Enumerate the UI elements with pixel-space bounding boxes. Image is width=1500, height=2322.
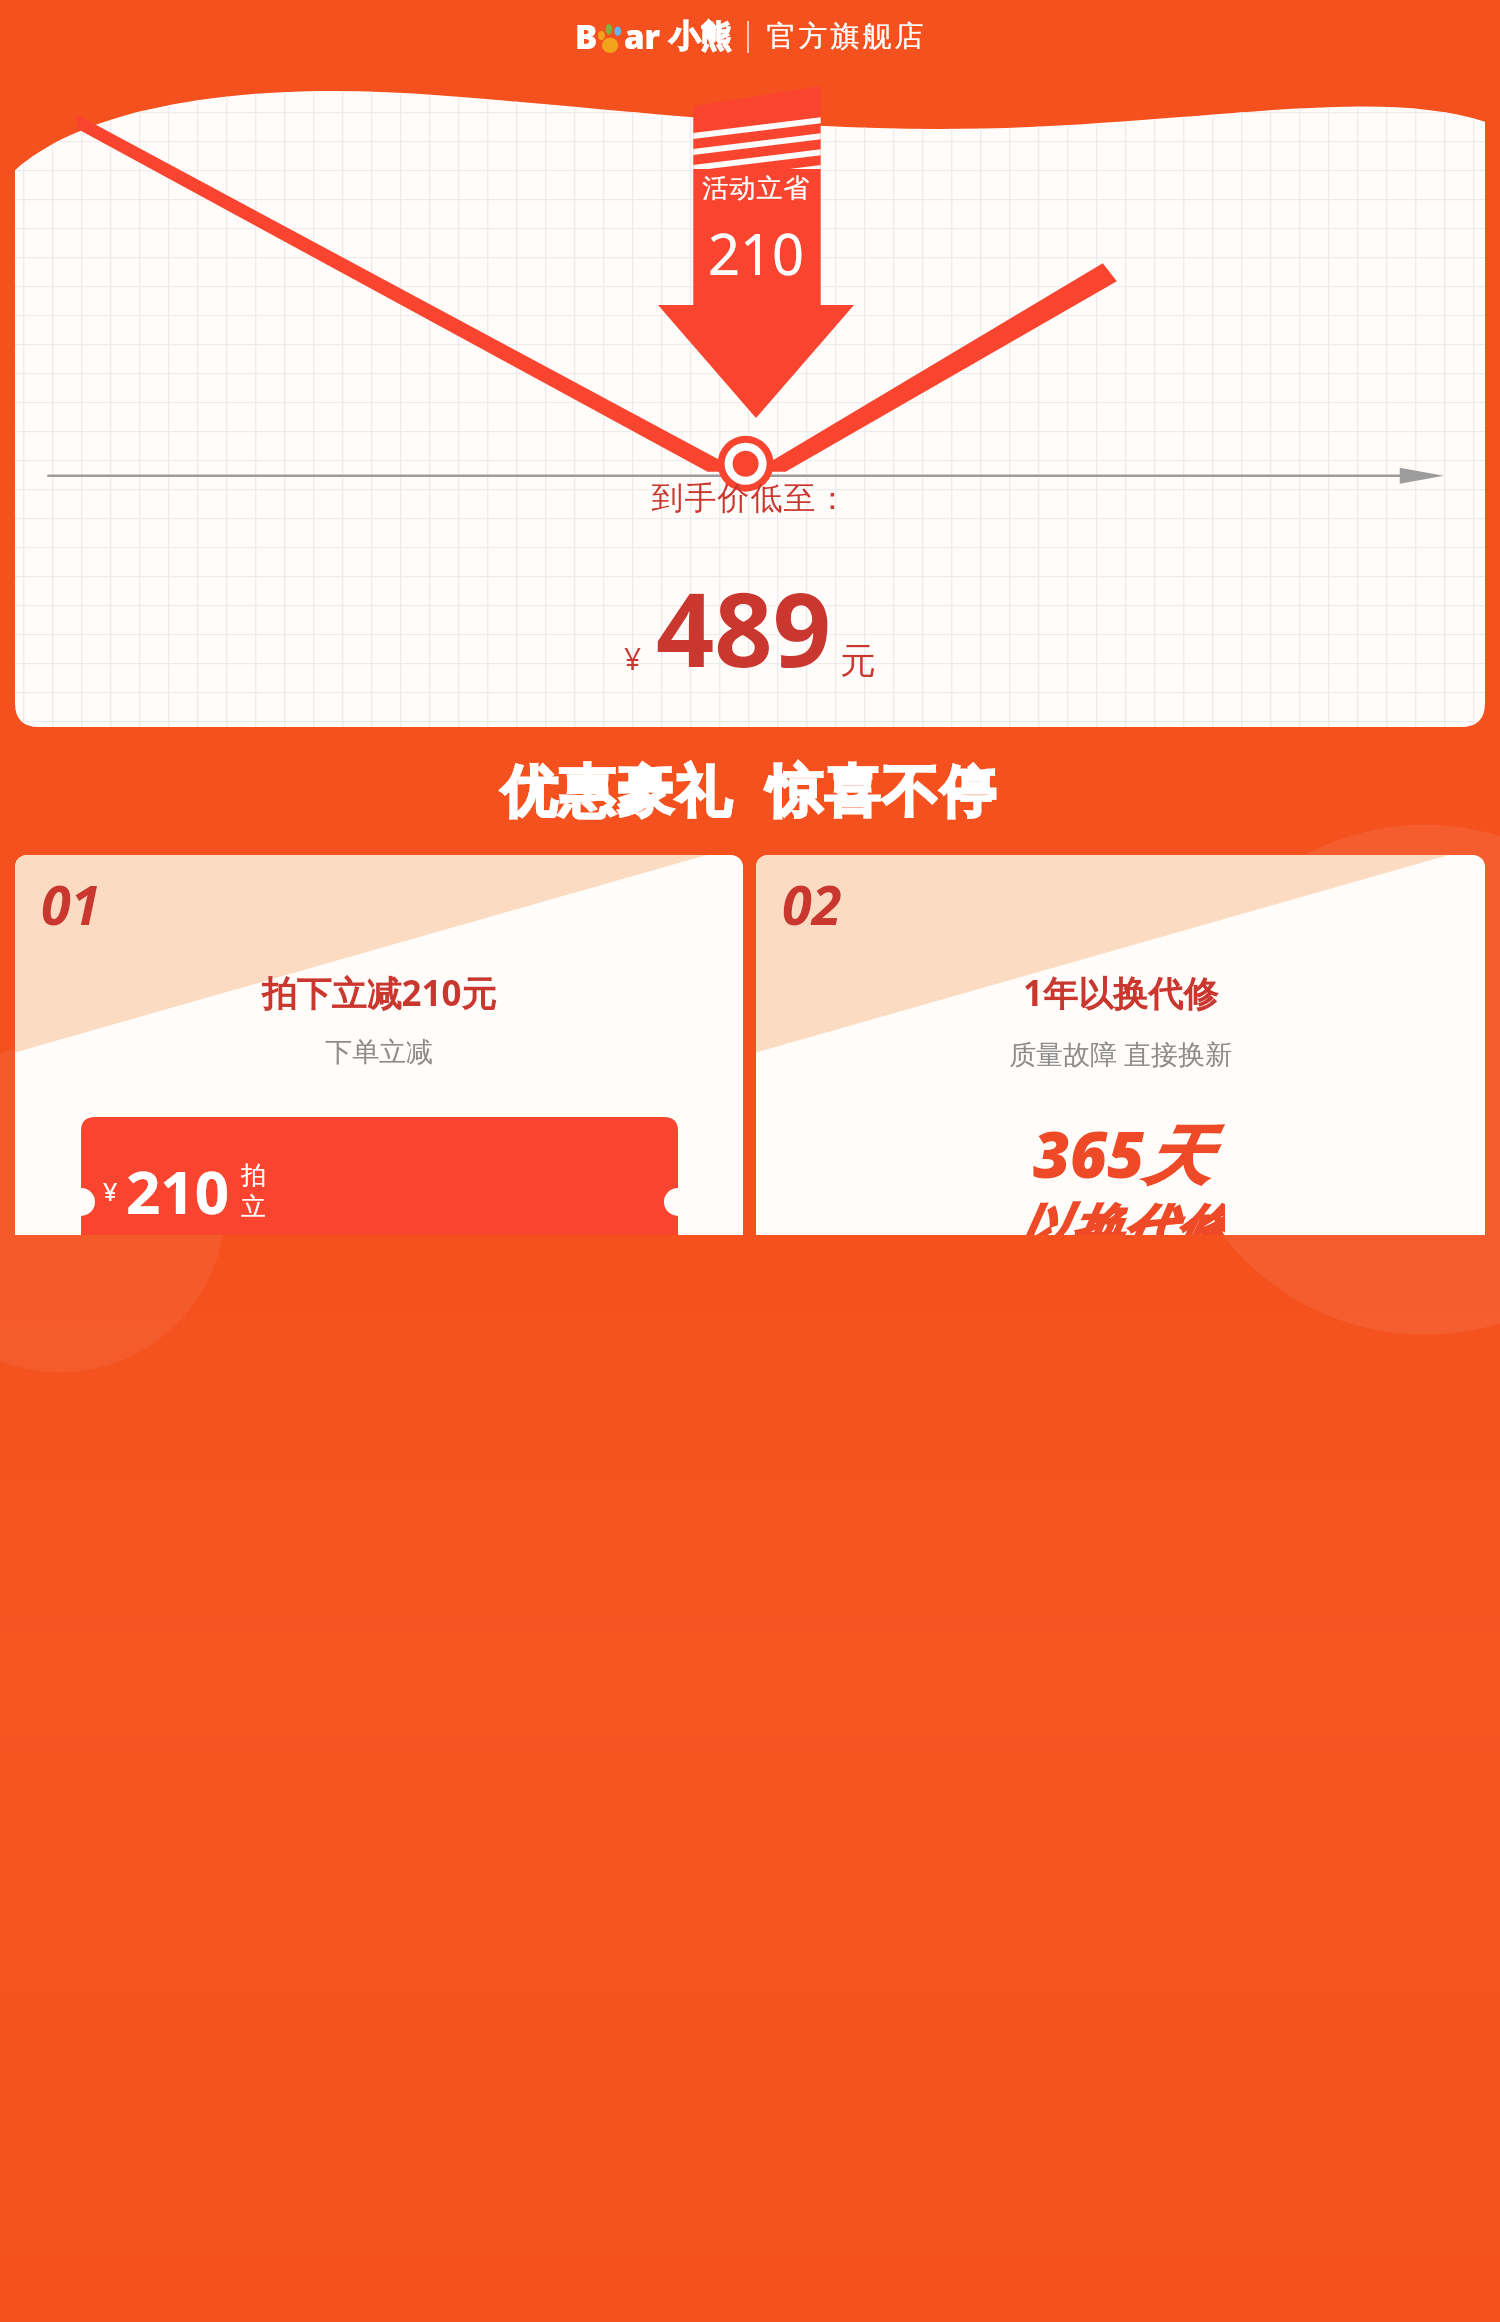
staticText: 小熊: [669, 17, 731, 56]
staticText: B: [575, 14, 598, 59]
button[interactable]: 01: [15, 855, 743, 1235]
staticText: ¥: [624, 638, 642, 679]
staticText: 优惠豪礼 惊喜不停: [501, 751, 999, 827]
button[interactable]: 02: [756, 855, 1485, 1235]
staticText: ar: [624, 14, 661, 59]
staticText: 立: [241, 1191, 266, 1222]
staticText: 1年以换代修: [756, 969, 1485, 1017]
staticText: 元: [840, 638, 876, 683]
staticText: 拍: [241, 1160, 266, 1191]
staticText: 到手价低至：: [651, 478, 849, 518]
staticText: 365天: [1033, 1110, 1209, 1197]
staticText: 489: [656, 558, 832, 697]
staticText: ¥: [103, 1174, 118, 1208]
staticText: 质量故障 直接换新: [756, 1035, 1485, 1072]
staticText: 下单立减: [15, 1035, 743, 1069]
staticText: 210: [708, 215, 805, 291]
staticText: 活动立省: [702, 172, 810, 205]
staticText: 210: [126, 1150, 229, 1232]
staticText: 以换代修: [1017, 1197, 1225, 1235]
staticText: 官方旗舰店: [765, 18, 925, 55]
button[interactable]: B: [565, 14, 935, 59]
staticText: 01: [41, 867, 101, 941]
staticText: 拍下立减210元: [15, 969, 743, 1017]
staticText: 02: [782, 867, 842, 941]
